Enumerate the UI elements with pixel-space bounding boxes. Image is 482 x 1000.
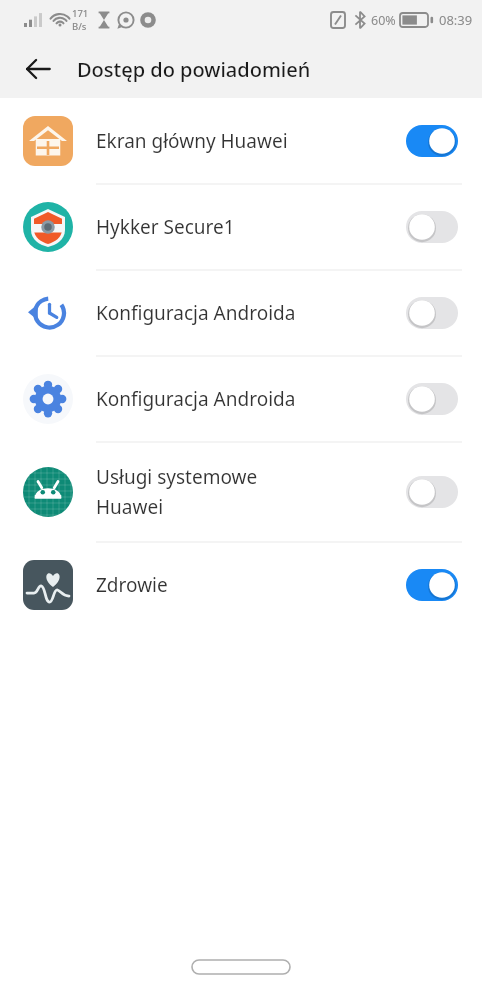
button[interactable]: Off <box>406 383 458 415</box>
staticText: Huawei <box>96 494 164 520</box>
staticText: Ekran główny Huawei <box>96 128 288 154</box>
staticText: Dostęp do powiadomień <box>77 56 311 83</box>
button[interactable]: Konfiguracja Androida <box>0 270 482 356</box>
button[interactable]: Usługi systemowe <box>0 442 482 542</box>
staticText: Konfiguracja Androida <box>96 300 296 326</box>
staticText: Hykker Secure1 <box>96 214 235 240</box>
button[interactable]: Off <box>406 297 458 329</box>
staticText: B/s <box>72 20 87 33</box>
staticText: Usługi systemowe <box>96 464 258 490</box>
button[interactable]: Off <box>406 211 458 243</box>
button[interactable]: Hykker Secure1 <box>0 184 482 270</box>
staticText: 171 <box>72 7 89 20</box>
staticText: 08:39 <box>439 11 473 29</box>
button[interactable]: Back <box>14 45 62 93</box>
button[interactable]: Off <box>406 476 458 508</box>
button[interactable]: Zdrowie <box>0 542 482 628</box>
button[interactable]: Konfiguracja Androida <box>0 356 482 442</box>
staticText: 60% <box>371 12 396 29</box>
button[interactable]: On <box>406 125 458 157</box>
button[interactable]: On <box>406 569 458 601</box>
button[interactable]: Home <box>192 960 290 974</box>
staticText: Konfiguracja Androida <box>96 386 296 412</box>
button[interactable]: Ekran główny Huawei <box>0 98 482 184</box>
staticText: Zdrowie <box>96 572 168 598</box>
